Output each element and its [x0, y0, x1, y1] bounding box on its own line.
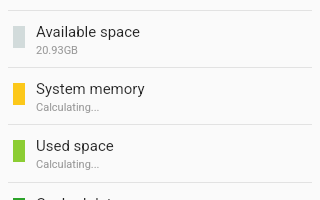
button[interactable]: Cached data [0, 182, 320, 200]
staticText: Calculating... [36, 101, 100, 114]
staticText: Cached data [36, 195, 120, 200]
staticText: Calculating... [36, 158, 100, 171]
staticText: 20.93GB [36, 44, 78, 57]
button[interactable]: Used space [0, 124, 320, 182]
staticText: Used space [36, 137, 114, 155]
staticText: Available space [36, 23, 141, 41]
staticText: System memory [36, 80, 145, 98]
button[interactable]: Available space [0, 10, 320, 67]
button[interactable]: System memory [0, 67, 320, 124]
